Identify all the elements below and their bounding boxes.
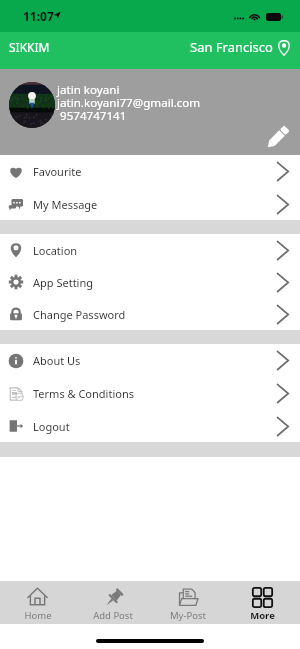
staticText: Favourite (33, 164, 82, 179)
button[interactable]: Change Password (0, 298, 300, 330)
staticText: Change Password (33, 307, 126, 322)
button[interactable]: San Francisco (188, 35, 294, 59)
staticText: About Us (33, 353, 81, 368)
staticText: Home (24, 609, 52, 622)
staticText: San Francisco (190, 38, 273, 56)
staticText: Add Post (93, 609, 133, 622)
staticText: My-Post (170, 609, 206, 622)
button[interactable]: App Setting (0, 266, 300, 298)
button[interactable]: Add Post (75, 581, 150, 622)
button[interactable]: Edit profile (262, 121, 294, 153)
button[interactable]: Terms & Conditions (0, 377, 300, 410)
button[interactable]: Logout (0, 410, 300, 442)
staticText: My Message (33, 197, 98, 212)
staticText: 11:07 (23, 8, 54, 24)
staticText: Location (33, 243, 78, 258)
button[interactable]: Home (0, 581, 75, 622)
button[interactable]: Location (0, 234, 300, 266)
button[interactable]: My-Post (150, 581, 225, 622)
button[interactable]: About Us (0, 344, 300, 377)
button[interactable]: My Message (0, 188, 300, 220)
staticText: Logout (33, 419, 70, 434)
staticText: More (250, 609, 275, 622)
button[interactable]: Favourite (0, 155, 300, 188)
button[interactable]: More (225, 581, 300, 622)
staticText: Terms & Conditions (33, 386, 134, 401)
staticText: App Setting (33, 275, 94, 290)
staticText: SIKKIM (9, 39, 50, 55)
staticText: jatin koyani jatin.koyani77@gmail.com 95… (57, 83, 201, 122)
